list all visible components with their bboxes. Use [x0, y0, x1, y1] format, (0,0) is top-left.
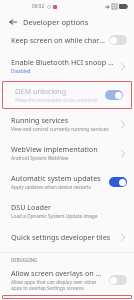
button[interactable]: Quick settings developer tiles [0, 226, 134, 248]
staticText: Developer options [23, 17, 89, 27]
staticText: Allow apps that can display over other a… [11, 279, 105, 291]
staticText: Load a Dynamic System Update image [11, 213, 98, 220]
button[interactable]: Running services [0, 110, 134, 138]
staticText: Quick settings developer tiles [11, 232, 111, 242]
staticText: Android System WebView [11, 155, 69, 162]
staticText: Running services [11, 115, 69, 125]
staticText: Keep screen on while charging [11, 35, 105, 45]
button[interactable]: Allow screen overlays on Settings [0, 265, 134, 294]
button[interactable]: Keep screen on while charging [0, 30, 134, 50]
button[interactable]: OEM unlocking [4, 83, 130, 107]
button[interactable]: Automatic system updates [0, 168, 134, 196]
staticText: View and control currently running servi… [11, 126, 109, 133]
staticText: Apply updates when device restarts [11, 184, 91, 191]
staticText: DSU Loader [11, 202, 51, 212]
staticText: Enable Bluetooth HCI snoop log [11, 57, 115, 67]
staticText: DEBUGGING [11, 257, 38, 263]
staticText: Automatic system updates [11, 173, 101, 183]
staticText: 09:52 [32, 3, 45, 10]
button[interactable]: WebView implementation [0, 139, 134, 167]
staticText: Allow the bootloader to be unlocked [15, 97, 97, 104]
staticText: WebView implementation [11, 144, 98, 154]
staticText: OEM unlocking [15, 86, 67, 96]
staticText: Disabled [11, 68, 31, 75]
button[interactable]: Allow screen overlays on Settings toggle [109, 275, 127, 285]
button[interactable]: Keep screen on while charging toggle [109, 35, 127, 45]
button[interactable]: Automatic system updates toggle [109, 177, 127, 187]
button[interactable]: OEM unlocking toggle [105, 90, 123, 100]
button[interactable]: Back [7, 16, 19, 28]
button[interactable]: Enable Bluetooth HCI snoop log [0, 52, 134, 80]
staticText: Allow screen overlays on Settings [11, 268, 105, 278]
button[interactable]: DSU Loader [0, 197, 134, 225]
